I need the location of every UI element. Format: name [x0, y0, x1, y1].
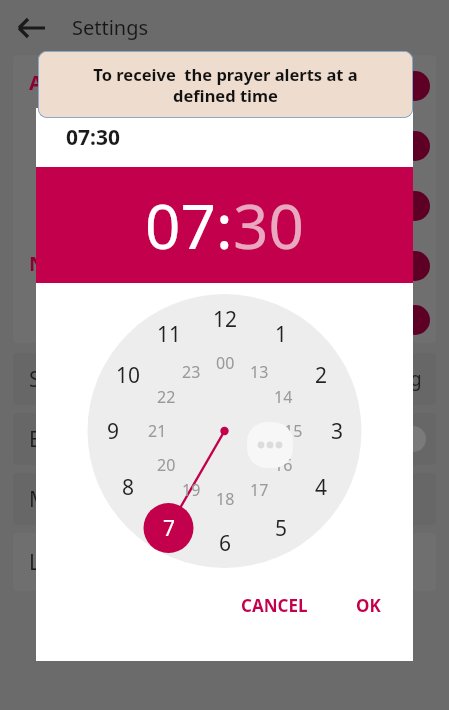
button[interactable]: 3 [315, 415, 359, 447]
staticText: 00 [216, 352, 235, 374]
staticText: : [216, 183, 233, 267]
button[interactable]: 23 [173, 359, 209, 385]
button[interactable]: 6 [203, 527, 247, 559]
staticText: 9 [107, 417, 120, 446]
button[interactable]: CANCEL [231, 588, 318, 623]
button[interactable]: 10 [106, 359, 150, 391]
staticText: 15 [284, 420, 303, 442]
button[interactable]: 21 [139, 418, 175, 444]
staticText: N [29, 250, 46, 277]
staticText: S [29, 365, 41, 394]
button[interactable]: 15 [275, 418, 311, 444]
button[interactable]: 17 [241, 477, 277, 503]
button[interactable]: 5 [259, 512, 303, 544]
staticText: 13 [250, 361, 269, 383]
staticText: 8 [122, 473, 135, 502]
button[interactable]: 07 [145, 183, 216, 267]
staticText: 10 [116, 361, 141, 390]
staticText: 6 [219, 529, 232, 558]
button[interactable]: 4 [299, 471, 343, 503]
staticText: 1 [275, 320, 288, 349]
staticText: 21 [148, 420, 167, 442]
button[interactable]: 22 [148, 384, 184, 410]
button[interactable]: 19 [173, 477, 209, 503]
button[interactable]: 12 [203, 303, 247, 335]
staticText: 17 [250, 479, 269, 501]
staticText: 22 [157, 386, 176, 408]
staticText: Login / Register [29, 548, 185, 577]
staticText: M [29, 485, 49, 514]
button[interactable]: M [13, 473, 436, 525]
staticText: 7 [163, 514, 176, 543]
button[interactable]: 00 [207, 350, 243, 376]
staticText: ig [405, 366, 422, 392]
staticText: 23 [182, 361, 201, 383]
staticText: Settings [72, 14, 149, 41]
staticText: OK [356, 594, 381, 617]
staticText: 19 [182, 479, 201, 501]
staticText: 16 [274, 454, 293, 476]
button[interactable]: S [13, 353, 436, 405]
button[interactable]: 2 [299, 359, 343, 391]
staticText: 11 [157, 320, 182, 349]
staticText: 07:30 [66, 123, 120, 152]
staticText: 4 [315, 473, 328, 502]
button[interactable]: 30 [233, 183, 304, 267]
button[interactable]: 20 [148, 452, 184, 478]
staticText: To receive the prayer alerts at a define… [93, 63, 358, 107]
button[interactable]: 16 [265, 452, 301, 478]
staticText: 20 [157, 454, 176, 476]
button[interactable]: A [13, 55, 436, 343]
button[interactable]: 18 [207, 486, 243, 512]
button[interactable]: 11 [147, 318, 191, 350]
staticText: 2 [315, 361, 328, 390]
button[interactable]: 1 [259, 318, 303, 350]
staticText: B [29, 425, 43, 454]
button[interactable]: Back [12, 8, 52, 48]
button[interactable]: OK [346, 588, 391, 623]
button[interactable]: B [13, 413, 436, 465]
staticText: 5 [275, 514, 288, 543]
staticText: 12 [213, 305, 238, 334]
staticText: A [29, 69, 43, 96]
staticText: 07 [145, 183, 216, 267]
button[interactable]: 7 [147, 512, 191, 544]
button[interactable]: Login / Register [13, 533, 436, 591]
button[interactable]: 13 [241, 359, 277, 385]
staticText: 30 [233, 183, 304, 267]
staticText: 3 [331, 417, 344, 446]
staticText: CANCEL [241, 594, 308, 617]
button[interactable]: More options [247, 422, 293, 468]
button[interactable]: 8 [106, 471, 150, 503]
button[interactable]: 9 [91, 415, 135, 447]
staticText: 18 [216, 488, 235, 510]
staticText: 14 [274, 386, 293, 408]
button[interactable]: 14 [265, 384, 301, 410]
